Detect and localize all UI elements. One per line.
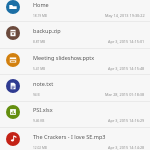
button[interactable]: The Crackers - I love SE.mp3 [0,127,150,150]
staticText: 5.41 MB [33,67,46,71]
staticText: backup.zip [33,27,61,34]
staticText: PSI.xlsx [33,106,53,113]
staticText: Home [33,1,49,8]
staticText: May 14, 2013 19:30:22 [105,13,145,18]
staticText: 9.46 KB [33,119,45,123]
staticText: Meeting slideshow.pptx [33,54,95,61]
staticText: 12.02 MB [33,146,47,150]
staticText: 8.87 MB [33,40,46,44]
staticText: note.txt [33,80,54,87]
button[interactable]: Meeting slideshow.pptx [0,48,150,74]
button[interactable]: PSI.xlsx [0,100,150,126]
staticText: Apr 3, 2015 14:15:01 [108,39,145,44]
staticText: Mar 28, 2015 01:18:38 [105,92,145,97]
button[interactable]: Home [0,0,150,21]
button[interactable]: note.txt [0,74,150,100]
staticText: Apr 3, 2015 14:15:48 [108,66,145,71]
staticText: Apr 3, 2015 14:14:28 [108,145,145,150]
staticText: The Crackers - I love SE.mp3 [33,133,106,140]
staticText: Apr 3, 2015 14:16:29 [108,118,145,123]
button[interactable]: backup.zip [0,21,150,47]
staticText: 18.19 MB [33,14,47,18]
staticText: 94 B [33,93,40,97]
